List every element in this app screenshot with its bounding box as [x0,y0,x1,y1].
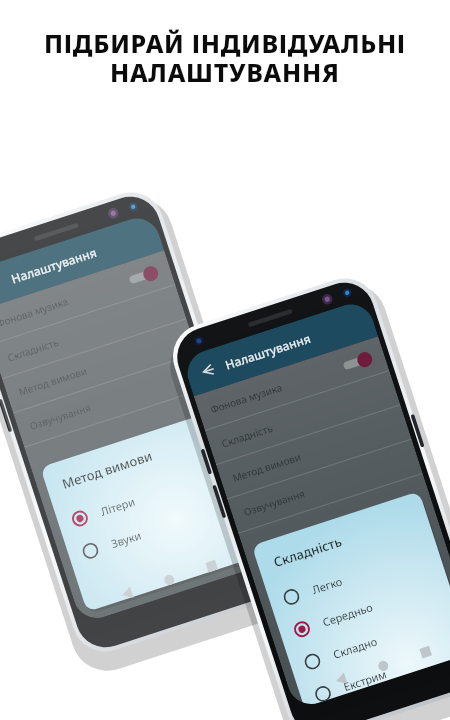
button[interactable]: Підбирай індивідуальні налаштування [0,0,450,720]
